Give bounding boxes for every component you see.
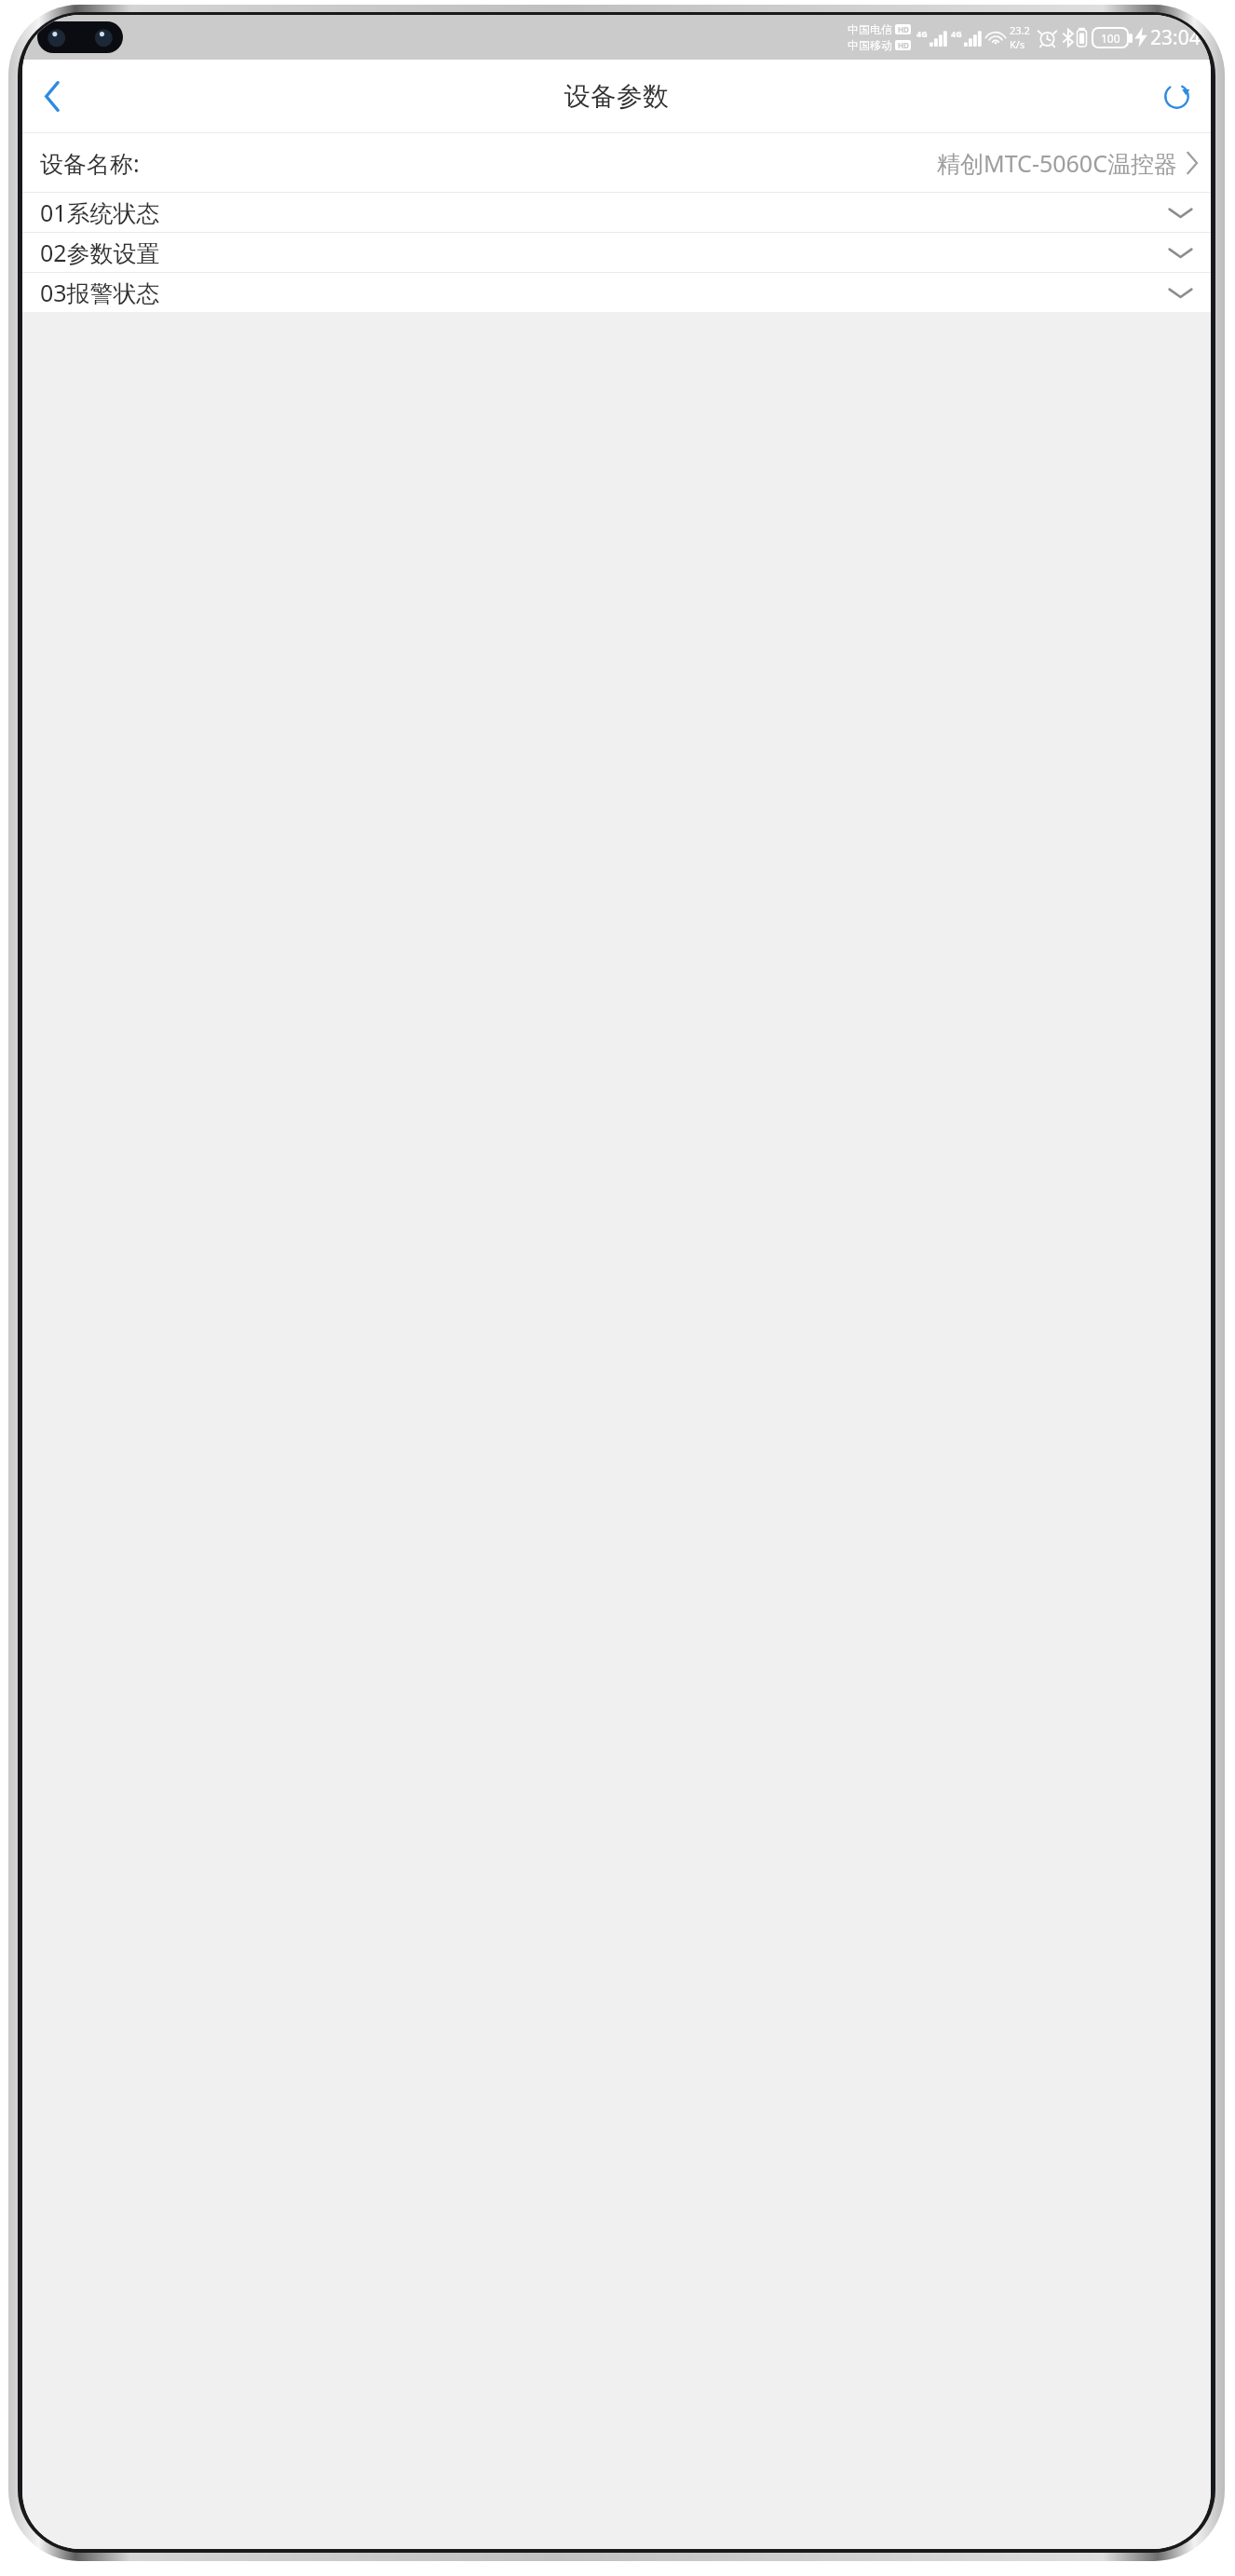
staticText: 中国电信 (848, 22, 892, 36)
staticText: 中国移动 (848, 38, 892, 52)
button[interactable]: 02参数设置 (22, 233, 1211, 272)
staticText: 4G (916, 28, 928, 39)
button[interactable]: 03报警状态 (22, 273, 1211, 312)
button[interactable]: 返回 (24, 68, 80, 124)
staticText: 03报警状态 (40, 277, 160, 308)
staticText: 设备参数 (564, 80, 669, 113)
staticText: K/s (1010, 37, 1025, 51)
staticText: 02参数设置 (40, 237, 160, 268)
staticText: 设备名称: (40, 147, 140, 179)
staticText: HD (898, 24, 909, 34)
button[interactable]: 刷新 (1148, 68, 1204, 124)
staticText: 23:04 (1150, 24, 1201, 51)
button[interactable]: 设备名称: (22, 133, 1211, 192)
staticText: 精创MTC-5060C温控器 (937, 147, 1177, 179)
staticText: 01系统状态 (40, 197, 160, 228)
button[interactable]: 01系统状态 (22, 193, 1211, 232)
staticText: 4G (951, 28, 962, 39)
staticText: HD (898, 40, 909, 50)
staticText: 100 (1101, 31, 1120, 46)
staticText: 23.2 (1010, 23, 1030, 37)
